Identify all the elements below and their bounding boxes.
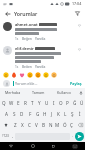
- staticText: V: [35, 122, 38, 128]
- button[interactable]: I: [50, 97, 57, 108]
- button[interactable]: Yanıtla: [35, 65, 46, 68]
- staticText: J: [51, 111, 53, 117]
- button[interactable]: Emoji: [11, 72, 17, 78]
- staticText: Ö: [63, 122, 67, 128]
- staticText: Paylaş: [70, 81, 82, 86]
- button[interactable]: Ç: [68, 119, 75, 130]
- button[interactable]: Emoji: [27, 72, 33, 78]
- button[interactable]: Ğ: [71, 97, 78, 108]
- staticText: Ü: [80, 100, 84, 106]
- button[interactable]: Beğen: [22, 37, 32, 41]
- button[interactable]: Q: [0, 97, 8, 108]
- staticText: A: [5, 111, 8, 117]
- button[interactable]: F: [26, 108, 34, 119]
- button[interactable]: O: [57, 97, 64, 108]
- staticText: L: [64, 111, 67, 117]
- button[interactable]: Sil: [75, 119, 85, 130]
- staticText: R: [24, 100, 27, 106]
- button[interactable]: P: [64, 97, 71, 108]
- button[interactable]: Son kullanılanlar: [43, 142, 64, 150]
- button[interactable]: H: [41, 108, 48, 119]
- button[interactable]: E: [15, 97, 22, 108]
- button[interactable]: X: [19, 119, 26, 130]
- button[interactable]: Ana ekran: [22, 142, 43, 150]
- button[interactable]: A: [2, 108, 10, 119]
- staticText: ?123: [2, 134, 9, 138]
- button[interactable]: ?123: [1, 131, 10, 141]
- button[interactable]: Y: [36, 97, 43, 108]
- button[interactable]: N: [47, 119, 54, 130]
- button[interactable]: Emoji: [51, 72, 57, 78]
- button[interactable]: U: [43, 97, 50, 108]
- button[interactable]: D: [18, 108, 26, 119]
- staticText: F: [29, 111, 32, 117]
- button[interactable]: Shift: [0, 119, 11, 130]
- staticText: B: [42, 122, 45, 128]
- button[interactable]: R: [22, 97, 29, 108]
- button[interactable]: M: [54, 119, 61, 130]
- button[interactable]: Beğen: [76, 22, 82, 28]
- button[interactable]: Klavye: [64, 142, 85, 150]
- staticText: I: [53, 100, 55, 106]
- staticText: Z: [14, 122, 17, 128]
- button[interactable]: Kullanıcı: [51, 88, 77, 97]
- staticText: H: [43, 111, 47, 117]
- button[interactable]: Geri: [3, 9, 12, 18]
- button[interactable]: Emoji: [35, 72, 41, 78]
- button[interactable]: Geri: [0, 142, 22, 150]
- button[interactable]: K: [55, 108, 62, 119]
- button[interactable]: Z: [11, 119, 19, 130]
- staticText: O: [59, 100, 63, 106]
- staticText: .: [72, 133, 74, 139]
- button[interactable]: Yanıtla: [35, 37, 46, 41]
- button[interactable]: İ: [76, 108, 83, 119]
- button[interactable]: Sesle yaz: [77, 88, 85, 97]
- button[interactable]: V: [33, 119, 40, 130]
- button[interactable]: L: [62, 108, 69, 119]
- staticText: Q: [2, 100, 6, 106]
- staticText: Yanıtla: [35, 37, 46, 41]
- button[interactable]: elif.demir: [0, 43, 85, 70]
- staticText: U: [45, 100, 49, 106]
- button[interactable]: Nokta: [70, 131, 75, 141]
- button[interactable]: C: [26, 119, 33, 130]
- button[interactable]: ahmet.onat: [0, 19, 85, 43]
- button[interactable]: Gönder: [75, 132, 84, 141]
- button[interactable]: Virgül: [10, 131, 15, 141]
- button[interactable]: Emoji: [19, 72, 25, 78]
- staticText: Merhaba: [5, 90, 21, 95]
- button[interactable]: Merhaba: [0, 88, 25, 97]
- button[interactable]: J: [48, 108, 55, 119]
- button[interactable]: Emoji: [43, 72, 49, 78]
- staticText: elif.demir: [15, 46, 34, 51]
- button[interactable]: Paylaş: [70, 81, 82, 86]
- staticText: Tamam: [32, 90, 45, 95]
- button[interactable]: Ş: [69, 108, 76, 119]
- staticText: Kullanıcı: [57, 90, 72, 95]
- button[interactable]: Tamam: [25, 88, 51, 97]
- staticText: X: [21, 122, 24, 128]
- staticText: 17:04: [72, 1, 82, 6]
- button[interactable]: Beğen: [22, 65, 32, 68]
- button[interactable]: Beğen: [76, 46, 82, 52]
- staticText: K: [57, 111, 60, 117]
- button[interactable]: G: [34, 108, 41, 119]
- staticText: S: [13, 111, 16, 117]
- staticText: İ: [79, 111, 81, 117]
- staticText: P: [66, 100, 69, 106]
- button[interactable]: Ö: [61, 119, 68, 130]
- button[interactable]: Yorum ekle…: [15, 81, 68, 86]
- button[interactable]: W: [8, 97, 15, 108]
- button[interactable]: Ü: [78, 97, 85, 108]
- button[interactable]: Filtrele: [73, 9, 82, 18]
- staticText: D: [20, 111, 24, 117]
- button[interactable]: S: [10, 108, 18, 119]
- staticText: Beğen: [22, 37, 32, 41]
- staticText: E: [17, 100, 20, 106]
- button[interactable]: B: [40, 119, 47, 130]
- button[interactable]: Emoji: [3, 72, 9, 78]
- button[interactable]: T: [29, 97, 36, 108]
- staticText: M: [55, 122, 60, 128]
- staticText: Y: [38, 100, 41, 106]
